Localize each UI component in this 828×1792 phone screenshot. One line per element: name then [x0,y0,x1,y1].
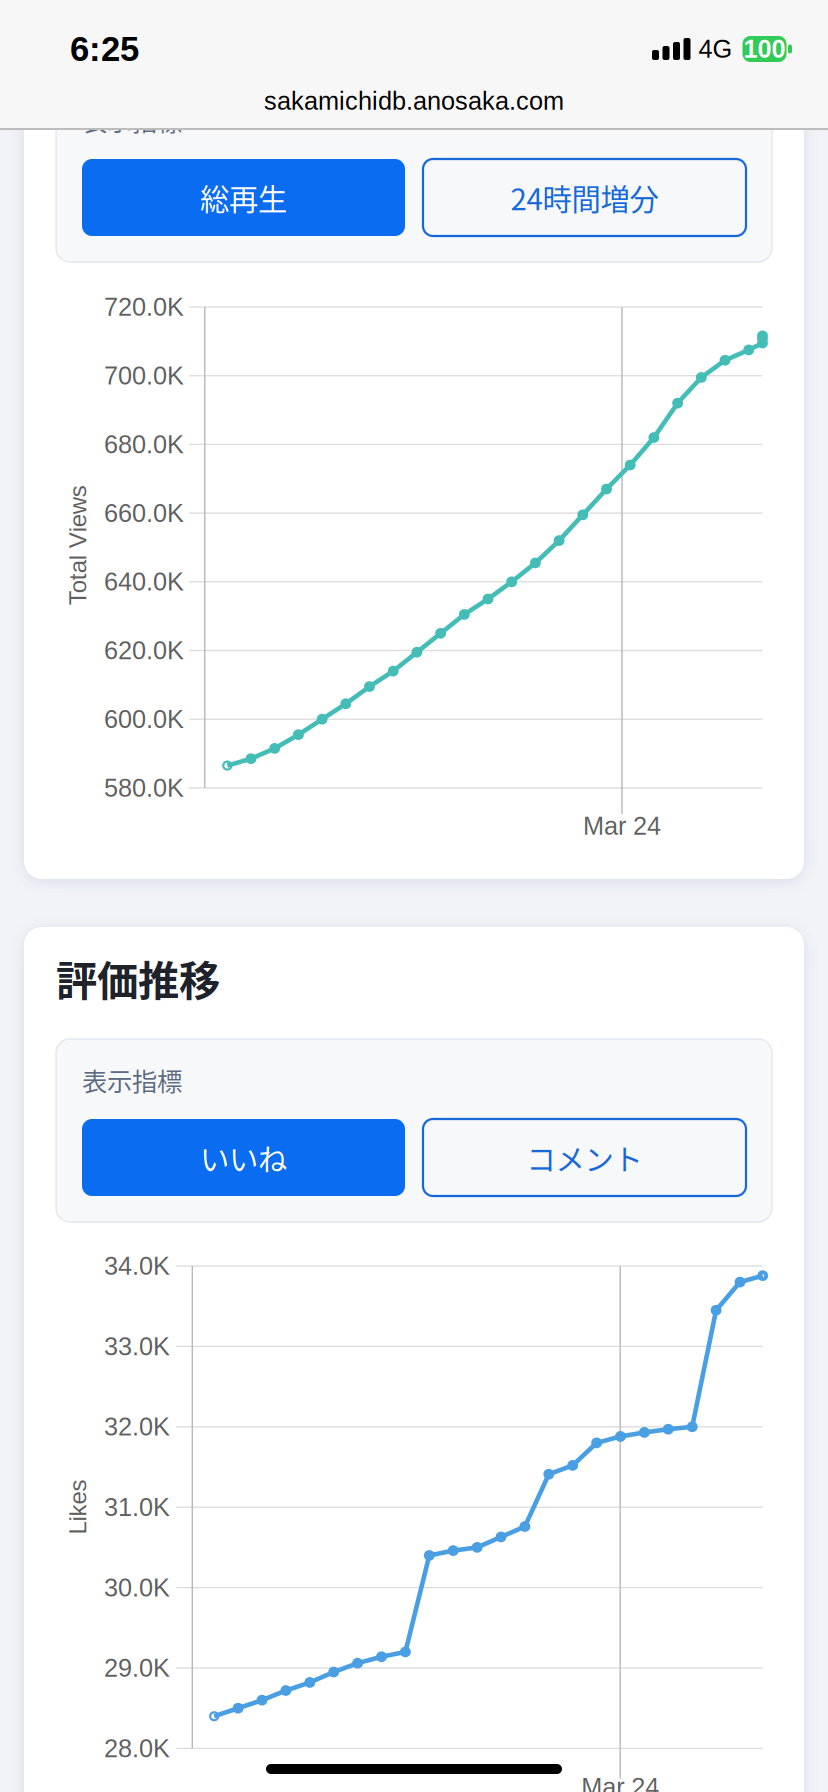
staticText: 600.0K [104,705,184,733]
staticText: 4G [698,35,732,63]
staticText: 評価推移 [56,948,220,1008]
staticText: 620.0K [104,636,184,665]
staticText: 6:25 [70,30,139,68]
staticText: コメント [526,1136,642,1179]
staticText: 700.0K [104,361,184,390]
staticText: Likes [50,1494,105,1520]
staticText: 33.0K [104,1332,170,1360]
staticText: いいね [200,1136,287,1179]
staticText: 24時間増分 [510,176,658,219]
staticText: 30.0K [104,1573,170,1602]
staticText: 34.0K [104,1252,170,1280]
staticText: Mar 24 [581,1773,659,1792]
staticText: 表示指標 [82,1062,182,1098]
button[interactable]: 総再生 [82,159,405,236]
staticText: 表示指標 [82,102,182,138]
staticText: 720.0K [104,293,184,321]
staticText: 32.0K [104,1413,170,1441]
button[interactable]: 24時間増分 [423,159,746,236]
staticText: 29.0K [104,1654,170,1682]
staticText: sakamichidb.anosaka.com [264,87,564,115]
button[interactable]: いいね [82,1119,405,1196]
staticText: 580.0K [104,774,184,802]
staticText: 31.0K [104,1493,170,1521]
staticText: Total Views [18,532,138,559]
button[interactable]: コメント [423,1119,746,1196]
staticText: 28.0K [104,1734,170,1762]
staticText: 660.0K [104,499,184,527]
staticText: 100 [743,35,785,63]
staticText: 総再生 [200,176,287,219]
staticText: 680.0K [104,430,184,458]
staticText: Mar 24 [583,812,661,840]
staticText: 640.0K [104,568,184,596]
